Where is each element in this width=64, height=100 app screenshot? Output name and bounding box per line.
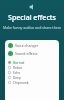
staticText: Sound effects: [15, 51, 38, 56]
staticText: Normal: [13, 61, 25, 65]
staticText: Robot: [13, 66, 22, 70]
staticText: Echo: [13, 71, 21, 75]
button[interactable]: Normal: [8, 60, 59, 65]
staticText: Voice changer: [15, 43, 39, 48]
staticText: Special effects: [0, 13, 64, 23]
button[interactable]: Robot: [8, 65, 59, 70]
staticText: Make funny audios and share them: [0, 25, 64, 30]
button[interactable]: Chipmunk: [8, 80, 59, 85]
staticText: Chipmunk: [13, 81, 29, 85]
staticText: Deep: [13, 76, 21, 80]
button[interactable]: Echo: [8, 70, 59, 75]
button[interactable]: Voice changer: [8, 43, 59, 48]
button[interactable]: Sound effects: [8, 51, 59, 56]
button[interactable]: Deep: [8, 75, 59, 80]
